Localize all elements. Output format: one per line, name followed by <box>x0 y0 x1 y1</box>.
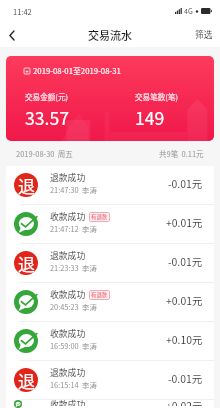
staticText: 2019-08-01至2019-08-31 <box>33 65 121 76</box>
staticText: 16:15:14 李涛 <box>50 379 97 390</box>
button[interactable]: 2019-08-01至2019-08-31 <box>6 56 214 141</box>
button[interactable]: 退 <box>6 244 214 282</box>
staticText: 收款成功 <box>50 327 86 340</box>
staticText: 16:59:00 李涛 <box>50 340 97 351</box>
staticText: 筛选 <box>195 28 213 41</box>
button[interactable]: 收款成功 <box>6 322 214 360</box>
staticText: 33.57 <box>25 105 69 130</box>
staticText: 21:47:30 李涛 <box>50 184 97 195</box>
staticText: 11:42 <box>13 6 32 17</box>
staticText: 4G <box>184 6 193 16</box>
button[interactable]: 返回 <box>0 24 22 46</box>
button[interactable]: 收款成功 <box>6 400 214 408</box>
staticText: 退 <box>18 368 35 392</box>
staticText: 退 <box>18 251 35 275</box>
button[interactable]: 退 <box>6 361 214 399</box>
staticText: -0.01元 <box>168 254 203 269</box>
staticText: 交易金额(元) <box>25 91 69 102</box>
staticText: 149 <box>135 105 165 130</box>
staticText: 有退款 <box>91 213 108 221</box>
staticText: -0.01元 <box>168 176 203 191</box>
button[interactable]: 收款成功 <box>6 283 214 321</box>
button[interactable]: 筛选 <box>188 23 220 46</box>
staticText: 退 <box>18 173 35 197</box>
staticText: +0.01元 <box>166 293 203 308</box>
staticText: 有退款 <box>91 291 108 299</box>
staticText: +0.02元 <box>166 398 203 406</box>
staticText: 20:45:23 李涛 <box>50 301 97 312</box>
staticText: 退款成功 <box>50 249 86 262</box>
staticText: +0.10元 <box>166 332 203 347</box>
staticText: +0.01元 <box>166 215 203 230</box>
staticText: -0.01元 <box>168 371 203 386</box>
staticText: 21:23:33 李涛 <box>50 262 97 273</box>
staticText: 交易流水 <box>88 27 132 43</box>
button[interactable]: 收款成功 <box>6 205 214 243</box>
staticText: 收款成功 <box>50 210 86 223</box>
staticText: 交易笔数(笔) <box>135 91 179 102</box>
staticText: 退款成功 <box>50 171 86 184</box>
staticText: 共9笔 0.11元 <box>159 148 204 159</box>
staticText: 收款成功 <box>50 398 86 406</box>
staticText: 21:47:12 李涛 <box>50 223 97 234</box>
staticText: 2019-08-30 周五 <box>16 148 73 159</box>
button[interactable]: 退 <box>6 166 214 204</box>
staticText: 退款成功 <box>50 366 86 379</box>
staticText: 收款成功 <box>50 288 86 301</box>
